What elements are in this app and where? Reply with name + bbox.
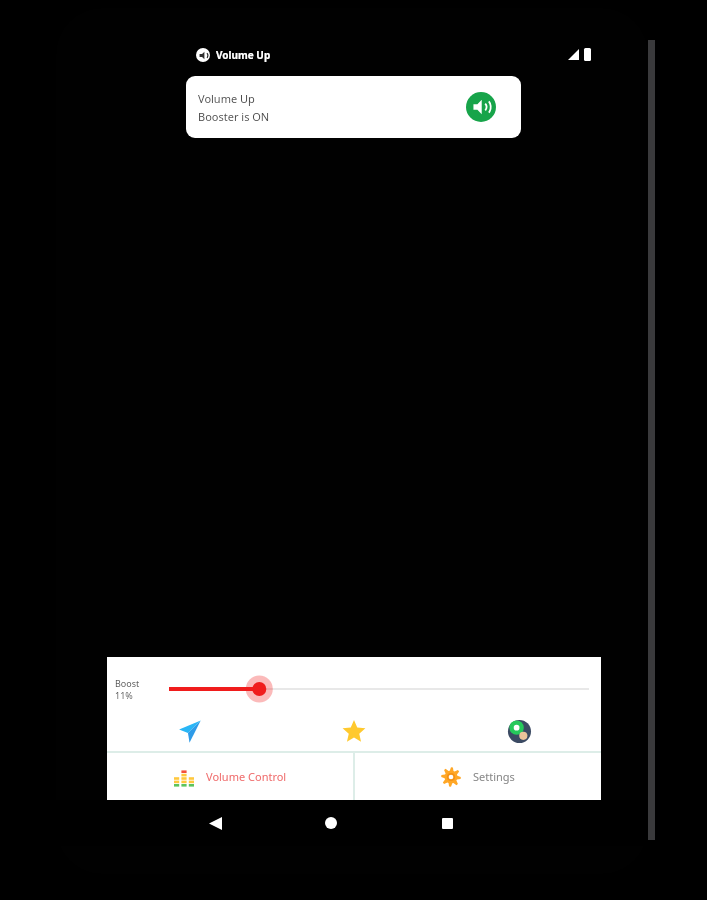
staticText: Booster is ON bbox=[198, 109, 270, 124]
button[interactable]: Share bbox=[107, 712, 271, 750]
other: Volume booster on bbox=[466, 92, 496, 122]
button[interactable]: Rate us bbox=[271, 712, 436, 750]
staticText: 11% bbox=[115, 689, 133, 701]
staticText: Volume Control bbox=[206, 769, 287, 784]
button[interactable]: Volume Control bbox=[107, 753, 353, 800]
button[interactable]: Volume Up bbox=[186, 76, 521, 138]
button[interactable]: Home bbox=[308, 800, 354, 846]
button[interactable]: Boost level slider bbox=[163, 669, 595, 709]
staticText: Settings bbox=[473, 769, 515, 784]
button[interactable]: More apps bbox=[436, 712, 601, 750]
staticText: Volume Up bbox=[198, 91, 255, 106]
button[interactable]: Recent apps bbox=[424, 800, 470, 846]
button[interactable]: Back bbox=[192, 800, 238, 846]
button[interactable]: Settings bbox=[355, 753, 601, 800]
staticText: Boost bbox=[115, 677, 140, 689]
staticText: Volume Up bbox=[216, 48, 271, 62]
